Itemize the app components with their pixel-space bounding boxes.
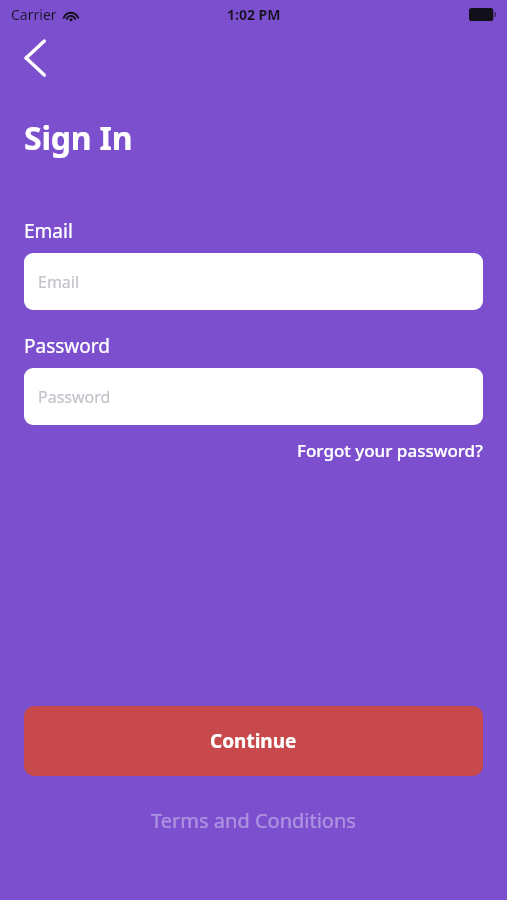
button[interactable]: Continue	[24, 706, 483, 776]
staticText: Password	[24, 333, 110, 359]
button[interactable]: Password	[24, 368, 483, 425]
staticText: Terms and Conditions	[151, 807, 356, 834]
staticText: Carrier	[11, 5, 57, 24]
staticText: Continue	[210, 728, 297, 754]
button[interactable]: Email	[24, 253, 483, 310]
button[interactable]: Back	[10, 32, 62, 84]
staticText: Sign In	[24, 116, 133, 160]
staticText: Email	[38, 271, 80, 293]
staticText: Forgot your password?	[297, 439, 483, 462]
staticText: 1:02 PM	[227, 5, 281, 24]
button[interactable]: Forgot your password?	[297, 439, 483, 462]
staticText: Password	[38, 386, 111, 408]
staticText: Email	[24, 218, 73, 244]
button[interactable]: Terms and Conditions	[0, 807, 507, 834]
